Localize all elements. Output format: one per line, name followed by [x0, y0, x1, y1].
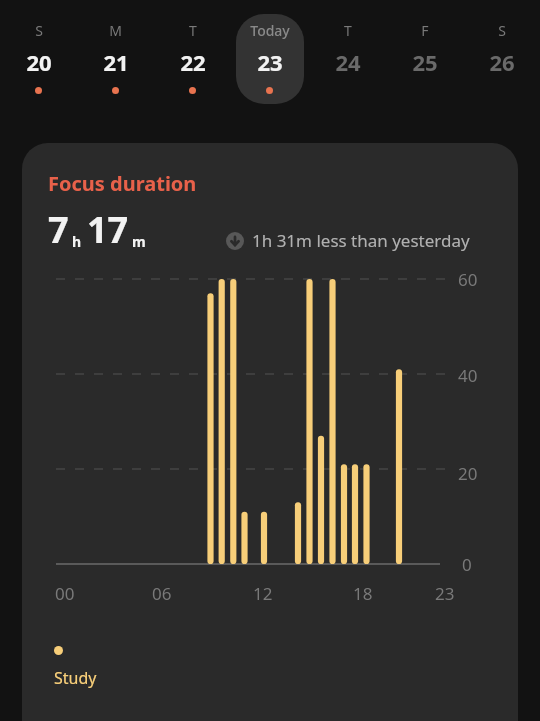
button[interactable]: Today [231, 12, 308, 104]
staticText: 21 [103, 47, 129, 77]
staticText: 24 [335, 47, 361, 77]
staticText: Today [250, 21, 290, 40]
staticText: 06 [152, 582, 172, 605]
staticText: 00 [55, 582, 75, 605]
staticText: 18 [353, 582, 373, 605]
staticText: 20 [26, 47, 52, 77]
staticText: 1h 31m less than yesterday [252, 229, 470, 252]
other: Decrease [226, 232, 244, 250]
button[interactable]: M [77, 12, 154, 104]
button[interactable]: T [154, 12, 231, 104]
staticText: 17 [87, 205, 129, 254]
staticText: T [344, 21, 352, 40]
staticText: Focus duration [48, 170, 197, 197]
staticText: Study [54, 667, 97, 689]
staticText: 12 [253, 582, 273, 605]
staticText: 25 [412, 47, 438, 77]
staticText: T [189, 21, 197, 40]
button[interactable]: S [0, 12, 77, 104]
staticText: 20 [458, 462, 478, 485]
button[interactable]: F [386, 12, 463, 104]
staticText: 23 [435, 582, 455, 605]
staticText: 0 [462, 553, 472, 576]
staticText: 7 [48, 205, 69, 254]
staticText: M [109, 21, 122, 40]
staticText: 26 [489, 47, 515, 77]
staticText: 60 [458, 268, 478, 291]
button[interactable]: S [463, 12, 540, 104]
staticText: S [35, 21, 43, 40]
button[interactable]: T [309, 12, 386, 104]
staticText: 40 [458, 364, 478, 387]
staticText: 22 [180, 47, 206, 77]
staticText: 23 [257, 47, 283, 77]
staticText: S [498, 21, 506, 40]
staticText: m [132, 232, 146, 251]
button[interactable]: Focus duration [22, 143, 518, 721]
staticText: h [72, 232, 82, 251]
staticText: F [421, 21, 429, 40]
